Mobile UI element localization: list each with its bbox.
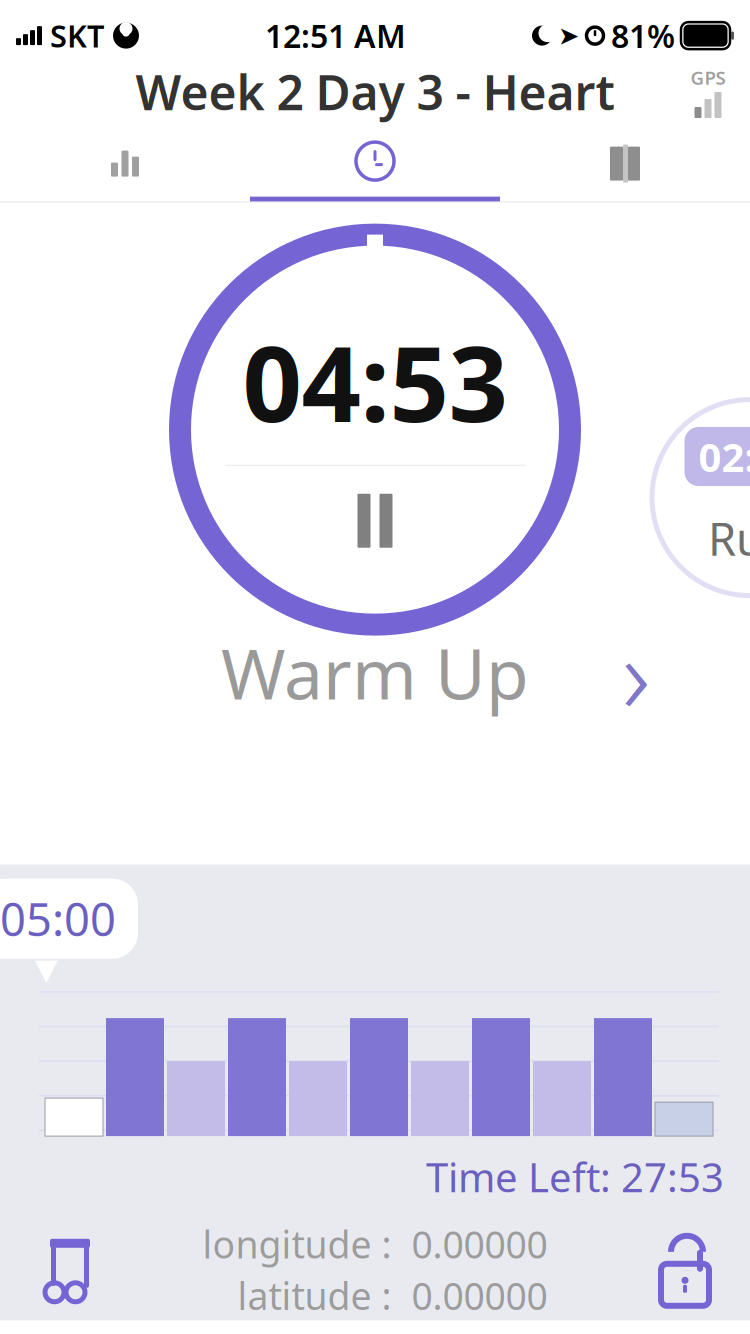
button[interactable]: Map — [500, 126, 750, 202]
staticText: Run — [708, 508, 750, 568]
button[interactable]: Warm Up — [0, 625, 750, 721]
staticText: latitude : 0.00000 — [237, 1271, 547, 1320]
staticText: GPS — [690, 65, 725, 90]
button[interactable]: Lock screen — [654, 1232, 750, 1308]
staticText: 05:00 — [0, 889, 116, 949]
button[interactable]: GPS signal — [686, 67, 730, 117]
button[interactable]: Stats — [0, 126, 250, 202]
staticText: longitude : 0.00000 — [202, 1219, 547, 1269]
button[interactable]: Timer — [250, 126, 500, 202]
staticText: 81% — [611, 14, 675, 57]
staticText: 04:53 — [242, 313, 507, 451]
staticText: ▼ — [35, 953, 58, 986]
staticText: 02:00 — [698, 430, 750, 483]
staticText: ➤ — [558, 21, 579, 50]
staticText: Week 2 Day 3 - Heart — [135, 60, 614, 123]
staticText: SKT — [50, 15, 104, 56]
staticText: Time Left: 27:53 — [426, 1150, 724, 1203]
button[interactable]: Music — [0, 1237, 96, 1303]
staticText: 12:51 AM — [265, 14, 406, 57]
staticText: › — [622, 602, 650, 743]
staticText: Warm Up — [221, 627, 529, 719]
